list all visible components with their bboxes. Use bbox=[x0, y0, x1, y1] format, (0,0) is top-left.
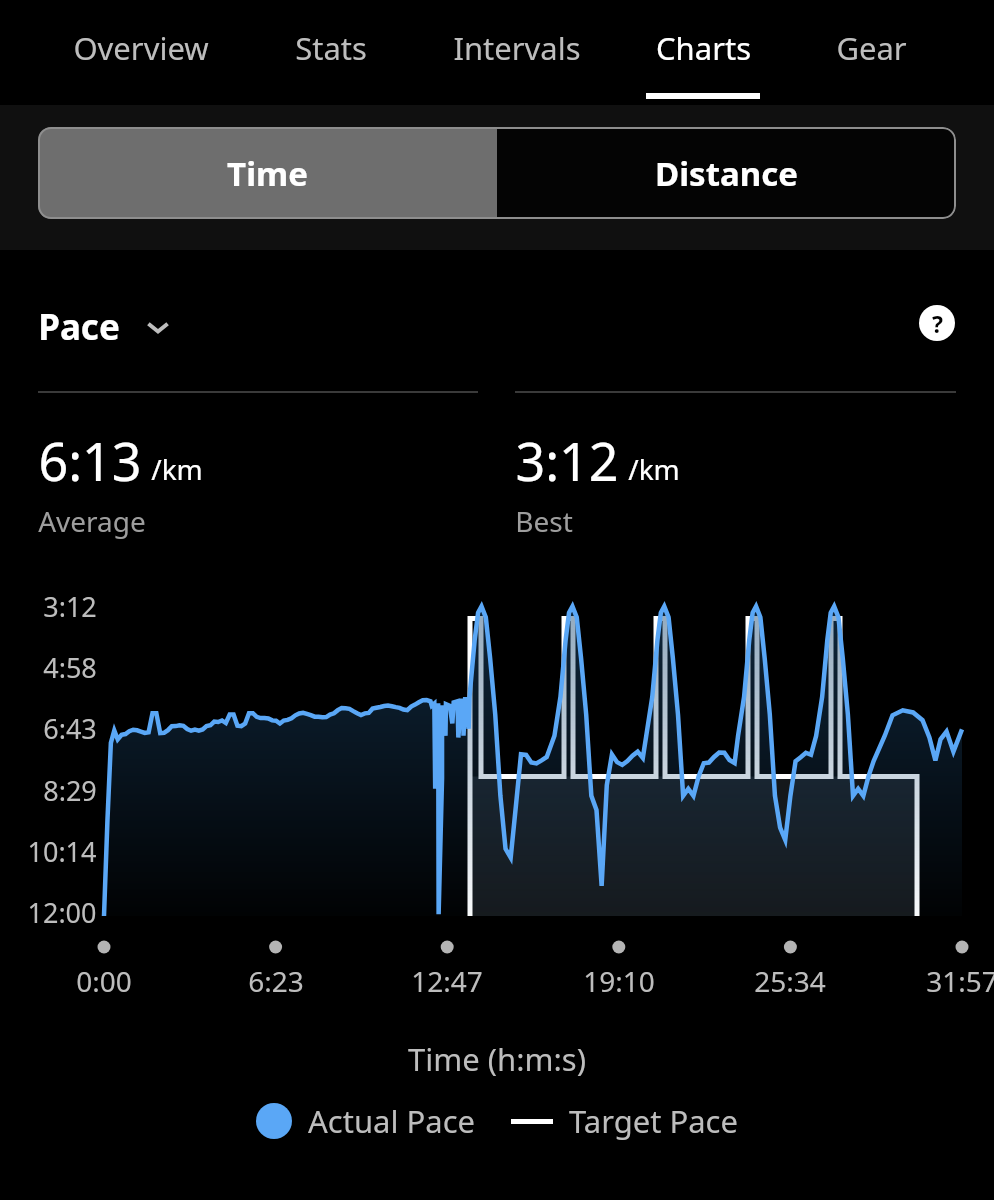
button[interactable]: Intervals bbox=[428, 0, 606, 105]
staticText: 12:00 bbox=[27, 894, 97, 931]
button[interactable]: Target Pace bbox=[511, 1100, 738, 1142]
staticText: 0:00 bbox=[76, 962, 132, 1000]
staticText: 8:29 bbox=[43, 772, 97, 809]
staticText: 4:58 bbox=[43, 649, 97, 686]
staticText: Distance bbox=[655, 151, 798, 196]
staticText: 31:57 bbox=[926, 962, 994, 1000]
button[interactable]: Overview bbox=[48, 0, 234, 105]
staticText: ? bbox=[932, 308, 943, 339]
staticText: Intervals bbox=[453, 27, 581, 69]
staticText: 25:34 bbox=[754, 962, 826, 1000]
staticText: 6:13 bbox=[38, 425, 142, 496]
button[interactable]: Stats bbox=[271, 0, 391, 105]
staticText: 12:47 bbox=[411, 962, 483, 1000]
button[interactable]: Gear bbox=[807, 0, 935, 105]
staticText: 6:43 bbox=[43, 710, 97, 747]
staticText: 19:10 bbox=[583, 962, 655, 1000]
staticText: Average bbox=[38, 502, 146, 540]
button[interactable]: Pace bbox=[38, 303, 174, 351]
staticText: 10:14 bbox=[27, 833, 97, 870]
staticText: Charts bbox=[656, 27, 751, 69]
staticText: 3:12 bbox=[515, 425, 619, 496]
button[interactable]: Actual Pace bbox=[256, 1100, 475, 1142]
staticText: Time bbox=[227, 151, 308, 196]
staticText: 3:12 bbox=[43, 588, 97, 625]
staticText: Time (h:m:s) bbox=[408, 1038, 586, 1080]
staticText: Actual Pace bbox=[308, 1100, 475, 1142]
button[interactable]: Charts bbox=[630, 0, 776, 105]
staticText: 6:23 bbox=[248, 962, 304, 1000]
staticText: Overview bbox=[73, 27, 209, 69]
staticText: Pace bbox=[38, 303, 120, 351]
staticText: Target Pace bbox=[569, 1100, 738, 1142]
staticText: Gear bbox=[836, 27, 907, 69]
button[interactable]: Help bbox=[917, 303, 957, 343]
staticText: /km bbox=[628, 450, 680, 488]
staticText: Stats bbox=[295, 27, 367, 69]
button[interactable]: Distance bbox=[497, 127, 956, 219]
staticText: Best bbox=[515, 502, 573, 540]
staticText: /km bbox=[151, 450, 203, 488]
button[interactable]: Time bbox=[38, 127, 497, 219]
